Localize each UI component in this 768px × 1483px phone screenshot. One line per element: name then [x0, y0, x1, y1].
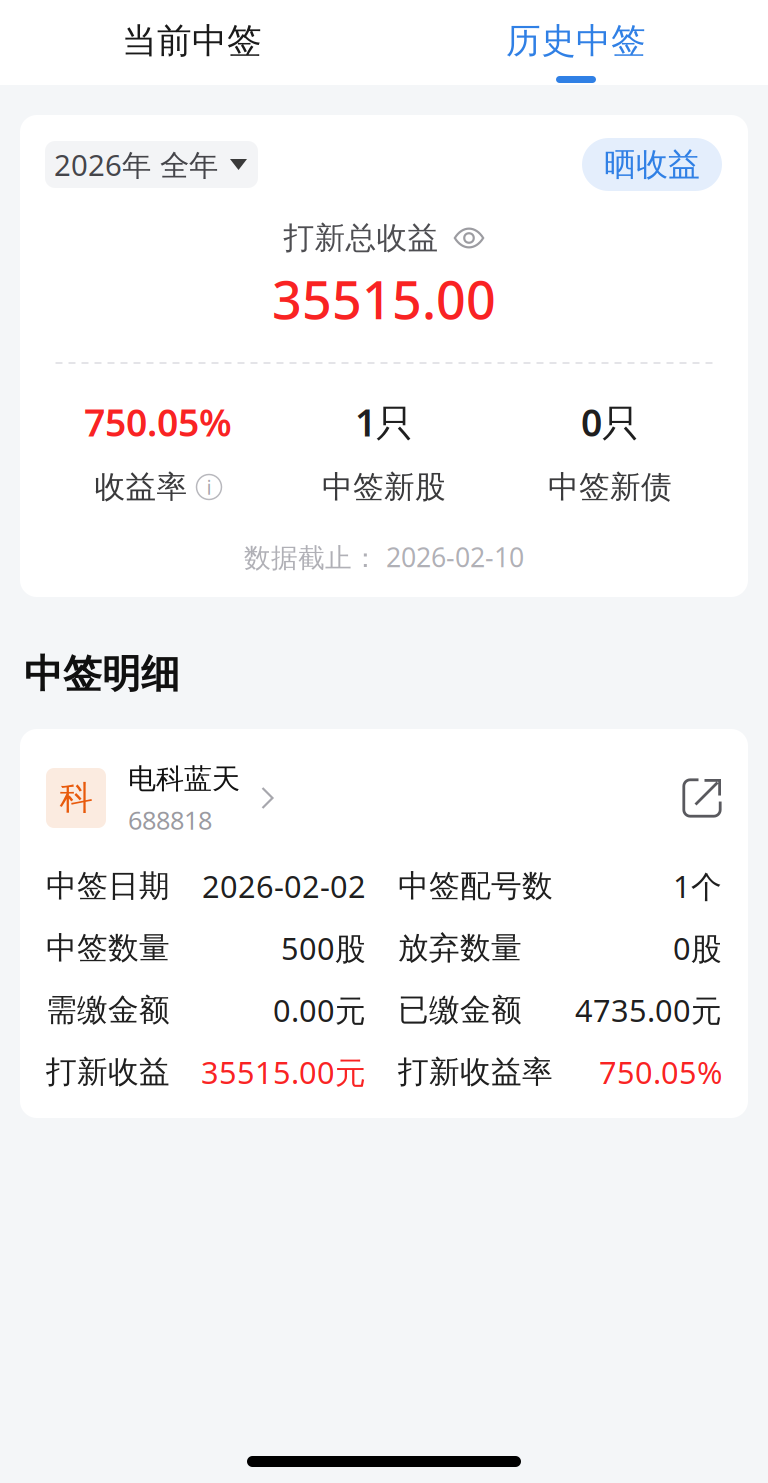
- staticText: 4735.00元: [575, 990, 722, 1030]
- staticText: 中签新债: [548, 468, 672, 506]
- button[interactable]: 2026年 全年: [45, 141, 258, 188]
- staticText: 中签新股: [322, 468, 446, 506]
- staticText: 750.05%: [84, 397, 232, 447]
- staticText: 晒收益: [604, 145, 700, 184]
- staticText: 电科蓝天: [128, 762, 240, 796]
- staticText: 中签数量: [46, 929, 170, 967]
- staticText: 1个: [673, 866, 722, 906]
- staticText: 中签明细: [24, 650, 180, 698]
- button[interactable]: 当前中签: [0, 0, 384, 89]
- staticText: 35515.00: [272, 264, 496, 334]
- staticText: 2026-02-02: [202, 866, 366, 906]
- staticText: 中签日期: [46, 867, 170, 905]
- staticText: 688818: [128, 803, 212, 837]
- staticText: 35515.00元: [201, 1052, 366, 1092]
- staticText: 0股: [673, 928, 722, 968]
- button[interactable]: 科: [46, 765, 274, 831]
- staticText: 打新收益: [46, 1053, 170, 1091]
- staticText: 500股: [281, 928, 366, 968]
- staticText: 0.00元: [273, 990, 366, 1030]
- staticText: 2026年 全年: [54, 145, 218, 184]
- staticText: 750.05%: [599, 1052, 722, 1092]
- staticText: 打新总收益: [283, 219, 438, 257]
- staticText: 0只: [581, 397, 639, 447]
- staticText: 科: [59, 777, 92, 818]
- staticText: i: [206, 474, 211, 500]
- staticText: 1只: [355, 397, 413, 447]
- staticText: 历史中签: [506, 20, 646, 62]
- staticText: 已缴金额: [398, 991, 522, 1029]
- button[interactable]: Open in new window: [682, 778, 722, 818]
- staticText: 放弃数量: [398, 929, 522, 967]
- button[interactable]: 历史中签: [384, 0, 768, 89]
- staticText: 收益率: [94, 468, 187, 506]
- staticText: 数据截止： 2026-02-10: [244, 539, 524, 575]
- staticText: 当前中签: [122, 20, 262, 62]
- button[interactable]: 晒收益: [582, 138, 722, 191]
- staticText: 中签配号数: [398, 867, 553, 905]
- staticText: 打新收益率: [398, 1053, 553, 1091]
- staticText: 需缴金额: [46, 991, 170, 1029]
